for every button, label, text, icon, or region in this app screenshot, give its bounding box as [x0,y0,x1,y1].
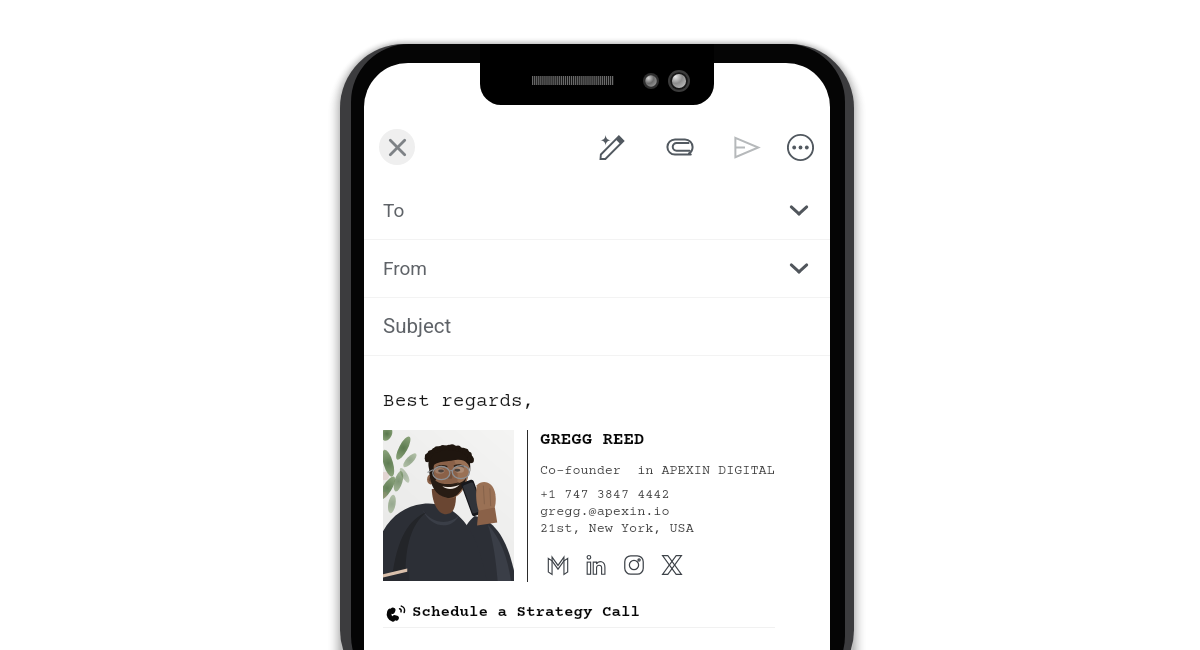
button[interactable]: More options [781,128,819,166]
button[interactable]: Subject [364,297,830,355]
staticText: 21st, New York, USA [540,521,694,536]
staticText: Best regards, [383,391,535,413]
button[interactable]: To [364,181,830,239]
button[interactable]: Send [727,128,765,166]
button[interactable]: Close [379,129,415,165]
staticText: gregg.@apexin.io [540,504,670,519]
staticText: Subject [383,314,452,338]
button[interactable]: Gmail [545,552,571,578]
staticText: To [383,199,405,221]
button[interactable]: Instagram [621,552,647,578]
staticText: Co-founder in APEXIN DIGITAL [540,463,775,478]
staticText: +1 747 3847 4442 [540,487,670,502]
staticText: Schedule a Strategy Call [412,604,641,622]
button[interactable]: Attach file [661,128,699,166]
button[interactable]: X [659,552,685,578]
button[interactable]: From [364,239,830,297]
button[interactable]: Schedule a Strategy Call [388,599,641,627]
button[interactable]: AI assist [593,127,631,165]
staticText: GREGG REED [540,430,645,450]
staticText: From [383,257,428,279]
button[interactable]: LinkedIn [583,552,609,578]
